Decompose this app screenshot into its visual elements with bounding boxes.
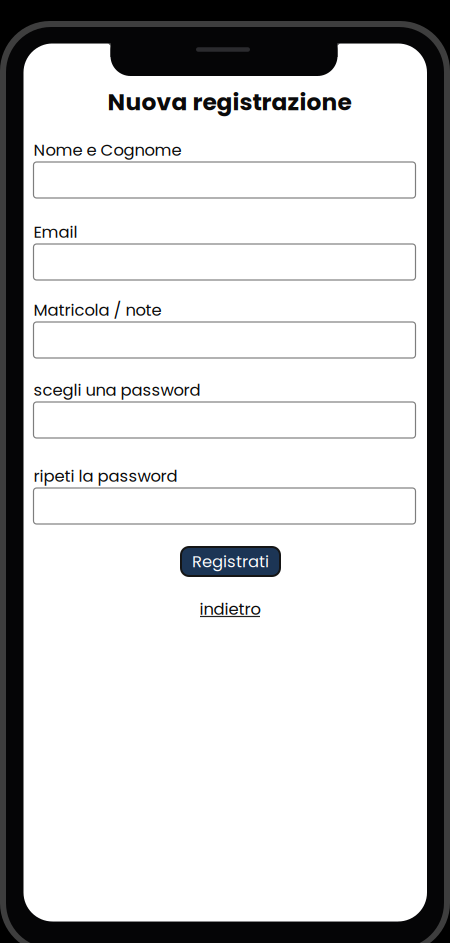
staticText: ripeti la password [33, 464, 177, 487]
staticText: Nuova registrazione [107, 86, 351, 118]
staticText: indietro [199, 597, 260, 620]
staticText: Matricola / note [33, 298, 161, 321]
staticText: Registrati [192, 550, 269, 573]
button[interactable]: indietro [0, 0, 450, 943]
staticText: Nome e Cognome [33, 138, 181, 161]
staticText: Email [33, 220, 77, 243]
staticText: scegli una password [33, 378, 200, 401]
button[interactable]: Registrati [181, 547, 280, 576]
